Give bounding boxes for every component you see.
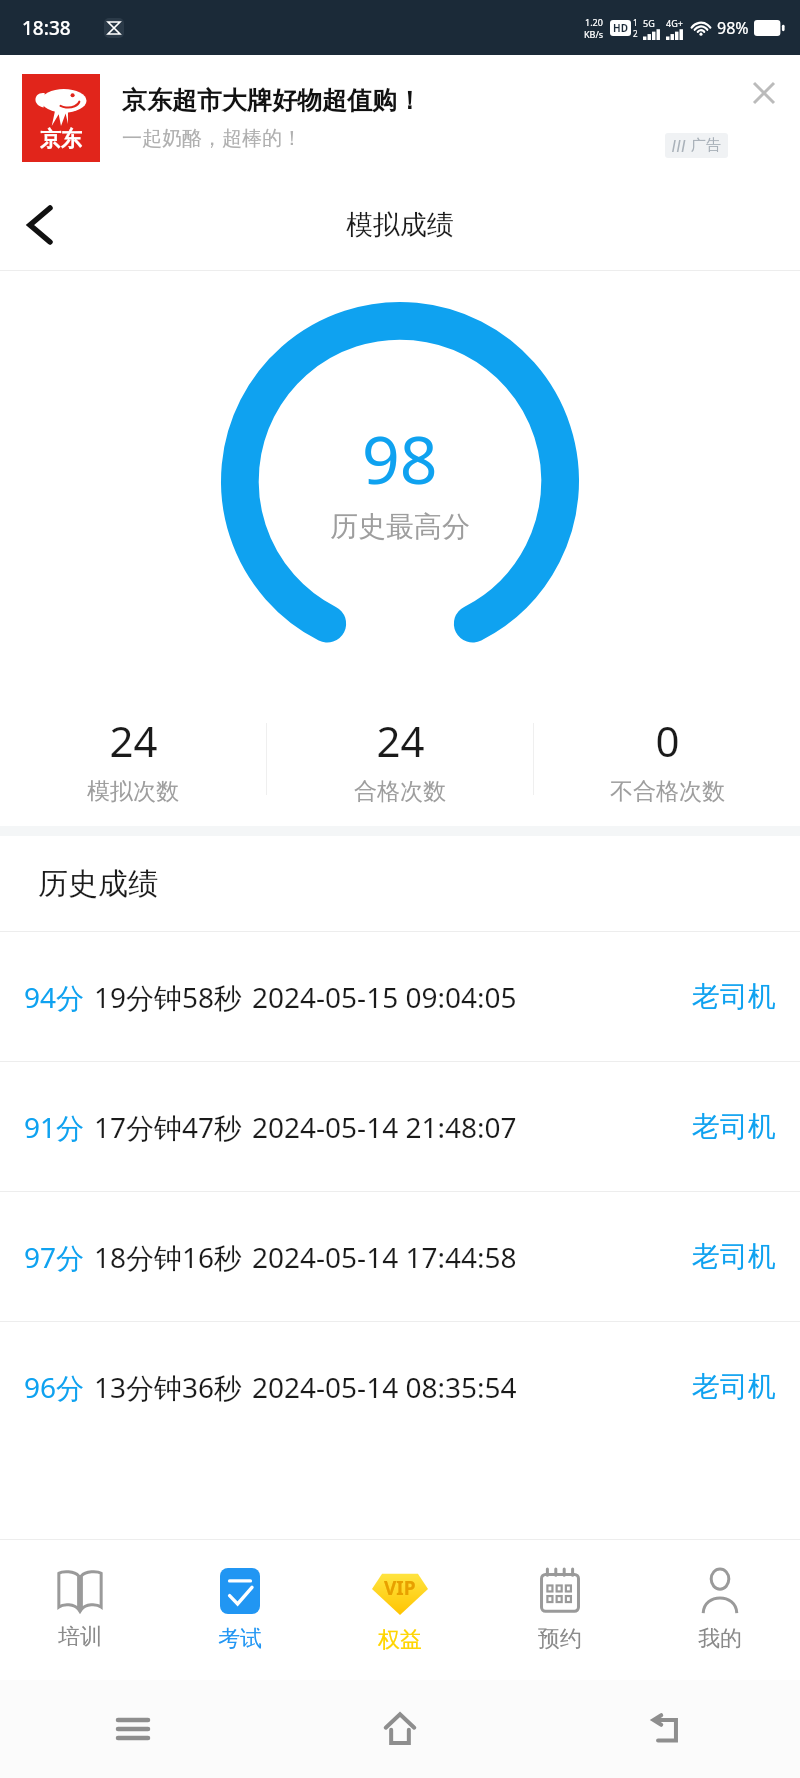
staticText: 2024-05-14 08:35:54 <box>252 1368 517 1406</box>
staticText: 96分 <box>24 1368 85 1406</box>
staticText: 98% <box>717 17 749 39</box>
staticText: 2024-05-15 09:04:05 <box>252 978 517 1016</box>
staticText: 98 <box>362 413 438 503</box>
button[interactable]: 关闭广告 <box>746 75 782 111</box>
button[interactable]: 96分 <box>0 1322 800 1451</box>
staticText: 5G <box>643 17 655 29</box>
staticText: 广告 <box>691 136 721 155</box>
staticText: VIP <box>384 1575 416 1601</box>
staticText: 18分钟16秒 <box>94 1238 243 1276</box>
staticText: 94分 <box>24 978 85 1016</box>
staticText: 历史成绩 <box>38 865 158 903</box>
staticText: 培训 <box>58 1623 102 1651</box>
button[interactable]: 返回 <box>533 1680 800 1778</box>
staticText: 17分钟47秒 <box>94 1108 243 1146</box>
staticText: 不合格次数 <box>610 777 725 806</box>
button[interactable]: VIP <box>320 1540 480 1680</box>
staticText: 2024-05-14 17:44:58 <box>252 1238 517 1276</box>
button[interactable]: 24 <box>0 691 266 826</box>
staticText: 2024-05-14 21:48:07 <box>252 1108 517 1146</box>
staticText: 1.20 <box>585 16 603 28</box>
staticText: 模拟成绩 <box>346 208 454 242</box>
button[interactable]: 返回 <box>12 197 68 253</box>
staticText: 京东超市大牌好物超值购！ <box>122 85 422 116</box>
button[interactable]: 预约 <box>480 1540 640 1680</box>
staticText: 91分 <box>24 1108 85 1146</box>
staticText: 模拟次数 <box>87 777 179 806</box>
staticText: 19分钟58秒 <box>94 978 243 1016</box>
staticText: 我的 <box>698 1625 742 1653</box>
staticText: 13分钟36秒 <box>94 1368 243 1406</box>
staticText: 24 <box>109 712 158 769</box>
staticText: 合格次数 <box>354 777 446 806</box>
staticText: 4G+ <box>666 17 683 29</box>
button[interactable]: 91分 <box>0 1062 800 1191</box>
staticText: 京东 <box>40 126 82 152</box>
staticText: 97分 <box>24 1238 85 1276</box>
button[interactable]: 我的 <box>640 1540 800 1680</box>
staticText: 2 <box>633 28 638 39</box>
staticText: 老司机 <box>692 979 776 1014</box>
staticText: 考试 <box>218 1625 262 1653</box>
staticText: 预约 <box>538 1625 582 1653</box>
button[interactable]: 0 <box>534 691 800 826</box>
staticText: 历史最高分 <box>330 509 470 544</box>
staticText: 24 <box>376 712 425 769</box>
staticText: KB/s <box>584 28 604 40</box>
staticText: 权益 <box>378 1626 422 1654</box>
button[interactable]: 最近任务 <box>0 1680 266 1778</box>
button[interactable]: 京东 <box>0 55 800 180</box>
button[interactable]: 培训 <box>0 1540 160 1680</box>
staticText: 1 <box>633 17 638 28</box>
button[interactable]: 97分 <box>0 1192 800 1321</box>
button[interactable]: 考试 <box>160 1540 320 1680</box>
staticText: 一起奶酪，超棒的！ <box>122 126 302 151</box>
button[interactable]: 94分 <box>0 932 800 1061</box>
button[interactable]: 主页 <box>266 1680 533 1778</box>
staticText: 老司机 <box>692 1239 776 1274</box>
staticText: HD <box>613 21 628 35</box>
staticText: 老司机 <box>692 1109 776 1144</box>
button[interactable]: 24 <box>267 691 533 826</box>
staticText: 老司机 <box>692 1369 776 1404</box>
staticText: 0 <box>655 712 680 769</box>
staticText: 18:38 <box>22 15 71 41</box>
